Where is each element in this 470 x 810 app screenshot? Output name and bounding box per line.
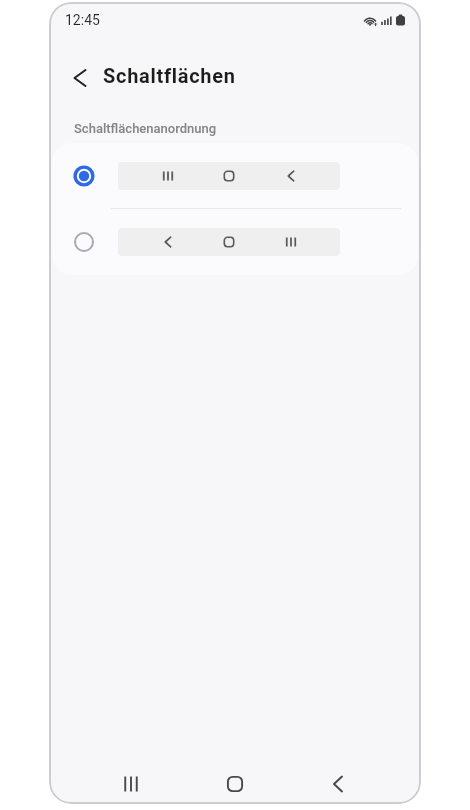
button[interactable] — [107, 760, 155, 804]
button[interactable] — [52, 143, 418, 208]
button[interactable] — [52, 209, 418, 274]
staticText: Schaltflächenanordnung — [74, 121, 217, 136]
staticText: Schaltflächen — [103, 64, 236, 87]
button[interactable] — [66, 64, 94, 92]
button[interactable] — [314, 760, 362, 804]
staticText: 12:45 — [65, 12, 100, 28]
button[interactable] — [211, 760, 259, 804]
